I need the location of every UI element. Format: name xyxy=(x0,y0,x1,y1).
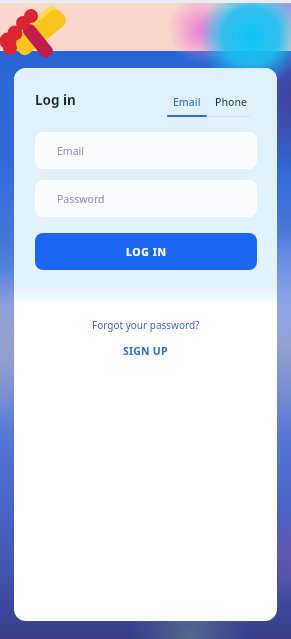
staticText: Forgot your password? xyxy=(92,318,200,332)
button[interactable]: Password xyxy=(35,180,257,217)
button[interactable]: Forgot your password? xyxy=(92,318,200,332)
staticText: Password xyxy=(57,192,105,206)
staticText: Log in xyxy=(35,91,76,109)
button[interactable]: Email xyxy=(166,88,208,115)
button[interactable]: Email xyxy=(35,132,257,169)
button[interactable]: Phone xyxy=(210,88,252,115)
button[interactable]: SIGN UP xyxy=(123,344,168,358)
staticText: SIGN UP xyxy=(123,344,168,358)
staticText: Email xyxy=(57,144,84,158)
staticText: LOG IN xyxy=(126,245,167,259)
button[interactable]: LOG IN xyxy=(35,233,257,270)
staticText: Email xyxy=(173,95,201,109)
staticText: Phone xyxy=(215,95,248,109)
